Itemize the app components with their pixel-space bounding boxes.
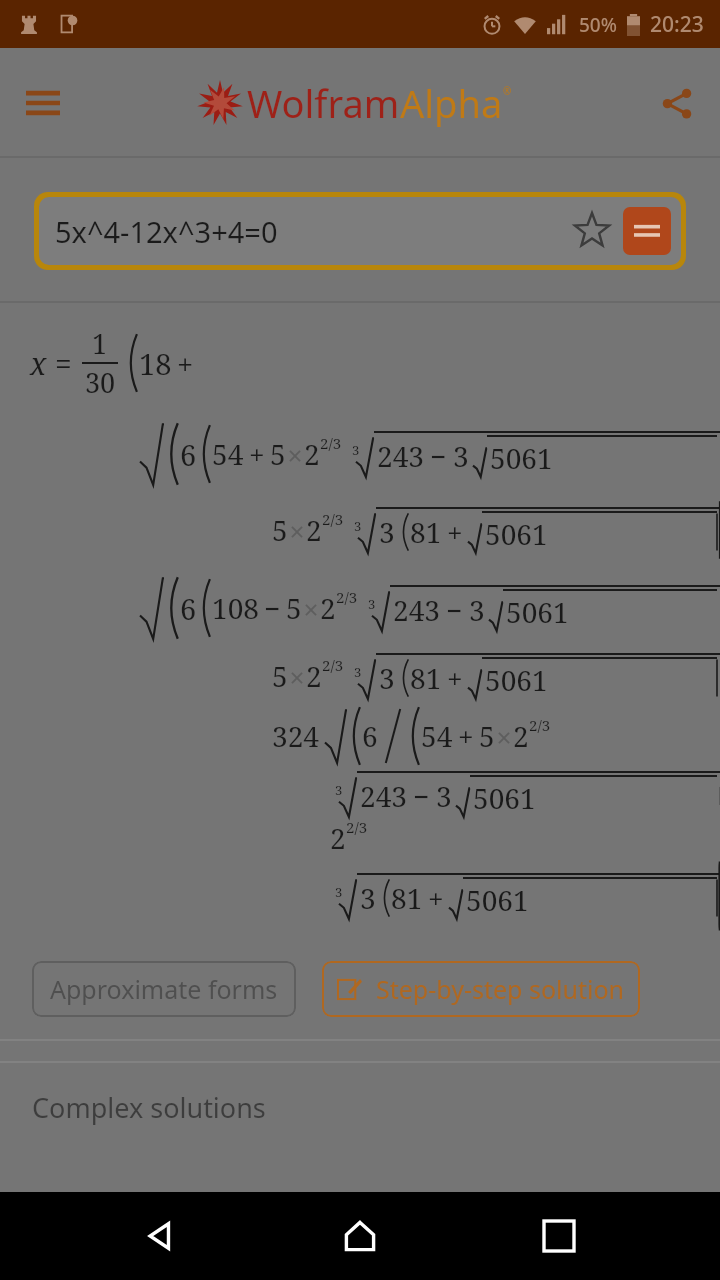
staticText: 2 <box>306 511 322 549</box>
button[interactable]: 5x^4-12x^3+4=0 <box>39 197 681 265</box>
button[interactable]: Favorite <box>565 204 619 258</box>
button[interactable]: Share <box>648 74 706 132</box>
staticText: 81 <box>391 879 423 917</box>
staticText: 3 <box>352 441 360 459</box>
staticText: 6 <box>362 717 378 755</box>
staticText: − <box>264 589 281 627</box>
staticText: 3 <box>469 591 485 629</box>
staticText: 243 <box>393 591 440 629</box>
staticText: 50% <box>579 12 617 38</box>
button[interactable]: Back <box>123 1198 199 1274</box>
staticText: 81 <box>410 659 442 697</box>
staticText: 2/3 <box>336 587 358 607</box>
staticText: 5 <box>286 589 302 627</box>
staticText: 6 <box>180 589 197 628</box>
staticText: ® <box>503 84 512 98</box>
staticText: 3 <box>360 879 376 917</box>
button[interactable]: Home <box>322 1198 398 1274</box>
staticText: 3 <box>354 663 362 681</box>
staticText: 18 <box>139 344 172 383</box>
staticText: 5 <box>272 511 288 549</box>
staticText: Complex solutions <box>32 1089 266 1126</box>
staticText: 3 <box>379 513 395 551</box>
staticText: 243 <box>360 777 407 815</box>
button[interactable]: Compute <box>623 207 671 255</box>
staticText: − <box>430 437 447 475</box>
staticText: 3 <box>453 437 469 475</box>
staticText: 5 <box>270 435 286 473</box>
staticText: 243 <box>377 437 424 475</box>
staticText: = <box>55 343 72 384</box>
staticText: 2 <box>320 589 336 627</box>
staticText: 2 <box>306 657 322 695</box>
staticText: Wolfram <box>247 77 400 129</box>
staticText: + <box>428 879 444 917</box>
staticText: 5061 <box>490 439 553 477</box>
staticText: 5 <box>479 717 495 755</box>
staticText: 5x^4-12x^3+4=0 <box>55 212 565 251</box>
staticText: 3 <box>436 777 452 815</box>
staticText: Approximate forms <box>50 972 278 1006</box>
staticText: − <box>446 591 463 629</box>
staticText: 2 <box>513 717 529 755</box>
button[interactable]: Recents <box>521 1198 597 1274</box>
staticText: 3 <box>335 781 343 799</box>
staticText: x <box>30 343 47 384</box>
staticText: 81 <box>410 513 442 551</box>
staticText: 6 <box>180 435 197 474</box>
staticText: 5061 <box>485 515 548 553</box>
staticText: 3 <box>354 517 362 535</box>
staticText: 5061 <box>473 779 536 817</box>
staticText: 54 <box>212 435 244 473</box>
staticText: 108 <box>212 589 259 627</box>
staticText: Alpha <box>400 77 503 129</box>
staticText: − <box>413 777 430 815</box>
staticText: 2/3 <box>322 509 344 529</box>
staticText: + <box>177 344 194 383</box>
button[interactable]: Step-by-step solution <box>322 961 640 1017</box>
staticText: Step-by-step solution <box>376 972 624 1006</box>
button[interactable]: Menu <box>14 74 72 132</box>
staticText: + <box>447 513 463 551</box>
staticText: 2/3 <box>346 817 368 837</box>
staticText: 2/3 <box>320 433 342 453</box>
staticText: 2/3 <box>322 655 344 675</box>
button[interactable]: Approximate forms <box>32 961 296 1017</box>
staticText: 54 <box>421 717 453 755</box>
staticText: + <box>458 717 474 755</box>
staticText: 3 <box>379 659 395 697</box>
staticText: 5061 <box>466 881 529 919</box>
staticText: 5 <box>272 657 288 695</box>
staticText: 3 <box>335 883 343 901</box>
staticText: 2/3 <box>529 715 551 735</box>
staticText: 5061 <box>506 593 569 631</box>
staticText: + <box>249 435 265 473</box>
staticText: 3 <box>368 595 376 613</box>
staticText: 5061 <box>485 661 548 699</box>
staticText: 1 <box>92 325 108 362</box>
staticText: + <box>447 659 463 697</box>
staticText: 324 <box>272 717 319 755</box>
staticText: 30 <box>85 364 116 401</box>
staticText: 2 <box>330 819 346 857</box>
staticText: 20:23 <box>650 10 704 39</box>
staticText: 2 <box>304 435 320 473</box>
